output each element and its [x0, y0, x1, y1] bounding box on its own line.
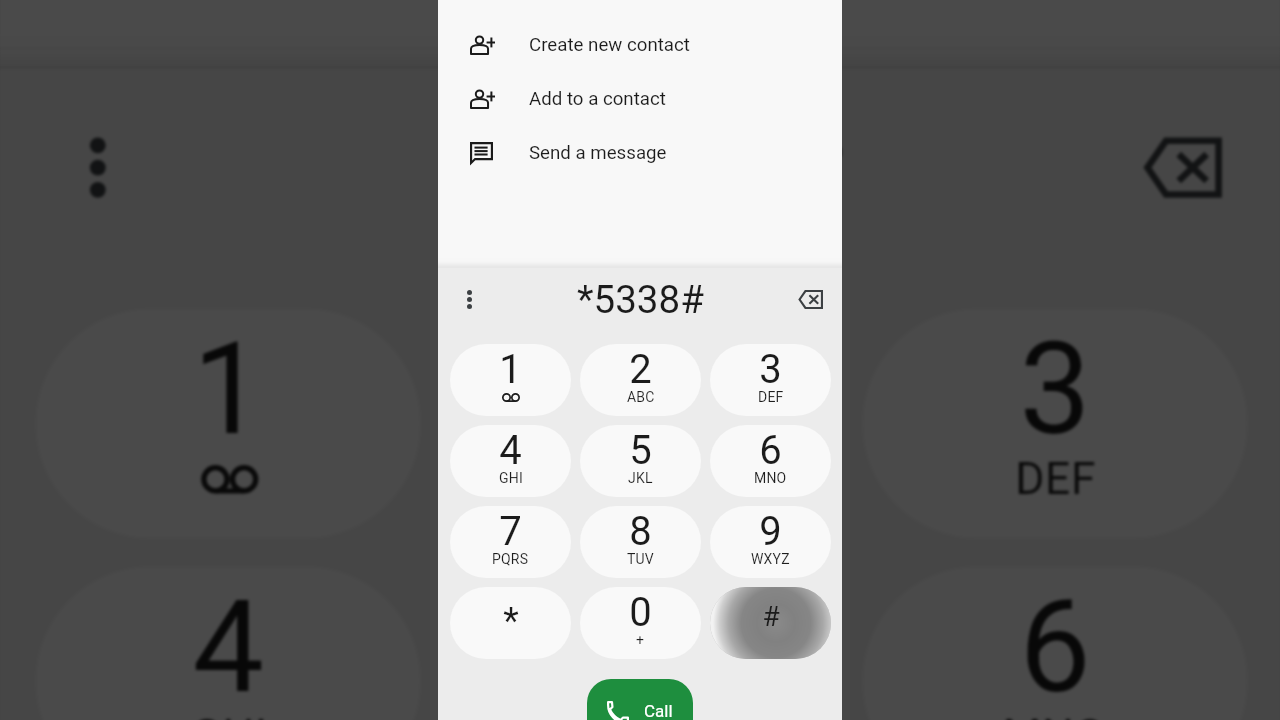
button[interactable]: Create new contact: [438, 18, 842, 72]
staticText: JKL: [628, 470, 653, 486]
staticText: PQRS: [492, 551, 529, 567]
button[interactable]: 2: [449, 309, 834, 538]
staticText: 2: [629, 346, 652, 393]
staticText: 1: [499, 346, 522, 393]
staticText: 6: [759, 427, 782, 474]
button[interactable]: More options: [36, 106, 157, 226]
staticText: *: [503, 600, 519, 642]
button[interactable]: Call: [587, 679, 693, 720]
button[interactable]: 7: [450, 506, 571, 578]
staticText: Send a message: [529, 142, 667, 164]
button[interactable]: 5: [449, 567, 834, 720]
staticText: JKL: [602, 710, 681, 720]
staticText: DEF: [758, 389, 784, 405]
staticText: 9: [759, 508, 782, 555]
button[interactable]: 4: [450, 425, 571, 497]
button[interactable]: 6: [863, 567, 1247, 720]
staticText: GHI: [192, 710, 268, 720]
staticText: 4: [499, 427, 522, 474]
staticText: 8: [629, 508, 652, 555]
staticText: MNO: [1002, 710, 1107, 720]
staticText: MNO: [754, 470, 787, 486]
staticText: 3: [1018, 315, 1091, 465]
button[interactable]: Send a message: [438, 126, 842, 180]
staticText: ABC: [599, 452, 688, 503]
staticText: 5: [629, 427, 652, 474]
button[interactable]: 4: [36, 567, 421, 720]
staticText: 2: [605, 315, 678, 465]
staticText: TUV: [627, 551, 654, 567]
button[interactable]: 5: [580, 425, 701, 497]
staticText: Add to a contact: [529, 88, 666, 110]
staticText: DEF: [1015, 452, 1098, 503]
button[interactable]: More options: [450, 280, 488, 318]
staticText: 0: [629, 589, 652, 636]
staticText: Create new contact: [529, 34, 690, 56]
button[interactable]: Add to a contact: [438, 72, 842, 126]
staticText: 4: [192, 573, 265, 720]
button[interactable]: 2: [580, 344, 701, 416]
staticText: 5: [605, 573, 678, 720]
button[interactable]: 3: [710, 344, 831, 416]
staticText: 6: [1018, 573, 1091, 720]
staticText: #: [762, 600, 780, 633]
button[interactable]: 3: [863, 309, 1247, 538]
staticText: GHI: [499, 470, 523, 486]
button[interactable]: *: [450, 587, 571, 659]
button[interactable]: Backspace: [790, 279, 830, 319]
staticText: 1: [192, 315, 265, 465]
button[interactable]: 9: [710, 506, 831, 578]
button[interactable]: 8: [580, 506, 701, 578]
staticText: *5338#: [577, 277, 704, 322]
staticText: *5338#: [440, 96, 844, 239]
button[interactable]: 0: [580, 587, 701, 659]
staticText: WXYZ: [751, 551, 790, 567]
staticText: +: [636, 632, 645, 648]
staticText: Call: [644, 701, 673, 720]
staticText: 3: [759, 346, 782, 393]
staticText: ABC: [627, 389, 655, 405]
button[interactable]: 1: [450, 344, 571, 416]
button[interactable]: 6: [710, 425, 831, 497]
button[interactable]: Backspace: [1117, 102, 1244, 230]
button[interactable]: #: [710, 587, 831, 659]
staticText: 7: [499, 508, 522, 555]
button[interactable]: 1: [36, 309, 421, 538]
